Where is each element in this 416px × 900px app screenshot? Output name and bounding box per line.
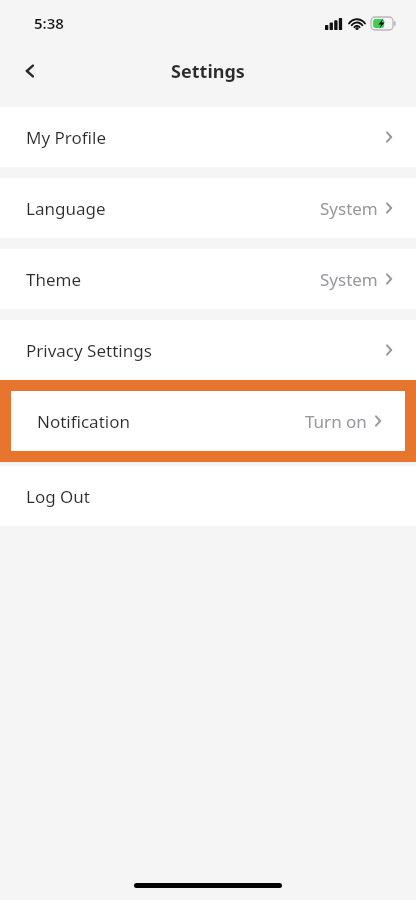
staticText: Theme <box>26 268 82 291</box>
staticText: System <box>320 268 378 291</box>
button[interactable]: My Profile <box>0 107 416 167</box>
button[interactable]: Theme <box>0 249 416 309</box>
staticText: Log Out <box>26 485 90 508</box>
button[interactable]: Log Out <box>0 466 416 526</box>
button[interactable]: Back <box>10 51 50 91</box>
button[interactable]: Language <box>0 178 416 238</box>
staticText: 5:38 <box>34 13 64 33</box>
staticText: System <box>320 197 378 220</box>
staticText: Settings <box>171 59 245 84</box>
staticText: Language <box>26 197 106 220</box>
button[interactable]: Privacy Settings <box>0 320 416 380</box>
staticText: My Profile <box>26 126 106 149</box>
button[interactable]: Notification <box>11 391 405 451</box>
staticText: Notification <box>37 410 130 433</box>
staticText: Privacy Settings <box>26 339 152 362</box>
staticText: Turn on <box>305 410 367 433</box>
